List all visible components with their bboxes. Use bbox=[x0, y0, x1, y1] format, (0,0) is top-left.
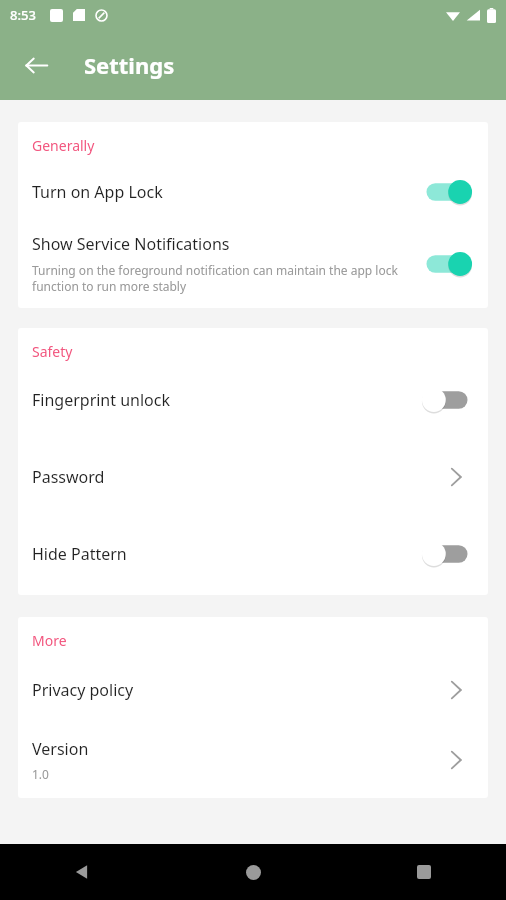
button[interactable]: Privacy policy bbox=[18, 666, 488, 714]
staticText: 1.0 bbox=[32, 766, 49, 782]
staticText: Hide Pattern bbox=[32, 543, 420, 565]
staticText: Password bbox=[32, 466, 438, 488]
other: Open bbox=[438, 742, 474, 778]
staticText: 8:53 bbox=[10, 6, 36, 24]
button[interactable]: Turn on App Lock bbox=[18, 169, 488, 215]
button[interactable]: On bbox=[420, 247, 474, 281]
staticText: Show Service Notifications bbox=[32, 233, 230, 255]
other: Open bbox=[438, 459, 474, 495]
button[interactable]: Recent apps bbox=[402, 850, 446, 894]
button[interactable]: Version bbox=[18, 736, 488, 784]
staticText: Version bbox=[32, 738, 89, 760]
button[interactable]: Off bbox=[420, 383, 474, 417]
staticText: More bbox=[32, 631, 67, 650]
button[interactable]: Off bbox=[420, 537, 474, 571]
staticText: Safety bbox=[32, 342, 73, 361]
button[interactable]: Password bbox=[18, 453, 488, 501]
other: Open bbox=[438, 672, 474, 708]
staticText: Turn on App Lock bbox=[32, 181, 420, 203]
button[interactable]: Home bbox=[231, 850, 275, 894]
button[interactable]: On bbox=[420, 175, 474, 209]
staticText: Fingerprint unlock bbox=[32, 389, 420, 411]
button[interactable]: Fingerprint unlock bbox=[18, 377, 488, 423]
staticText: Turning on the foreground notification c… bbox=[32, 262, 410, 294]
button[interactable]: Back bbox=[10, 39, 62, 91]
button[interactable]: Show Service Notifications bbox=[18, 231, 488, 296]
staticText: Privacy policy bbox=[32, 679, 438, 701]
button[interactable]: Hide Pattern bbox=[18, 531, 488, 577]
button[interactable]: Back bbox=[60, 850, 104, 894]
staticText: Generally bbox=[32, 136, 95, 155]
staticText: Settings bbox=[84, 50, 175, 80]
